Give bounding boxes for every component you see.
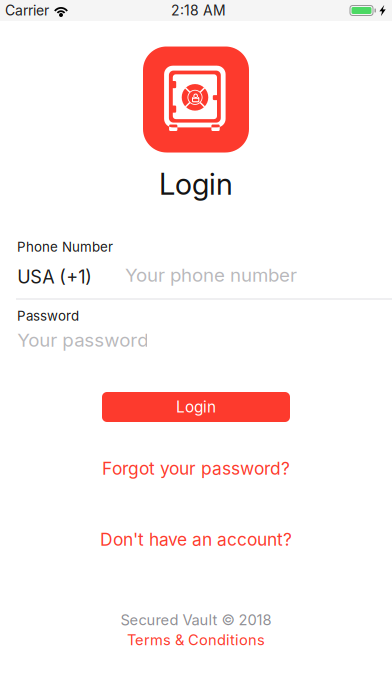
staticText: Carrier	[5, 2, 49, 19]
button[interactable]: Terms & Conditions	[116, 630, 276, 650]
button[interactable]: Don't have an account?	[86, 527, 306, 551]
staticText: Login	[159, 166, 233, 202]
staticText: Forgot your password?	[102, 458, 290, 479]
staticText: 2:18 AM	[171, 2, 226, 19]
staticText: Secured Vault © 2018	[120, 611, 271, 629]
staticText: Don't have an account?	[100, 529, 292, 550]
staticText: USA (+1)	[17, 266, 92, 288]
staticText: Your phone number	[125, 264, 297, 286]
staticText: Login	[176, 398, 216, 416]
staticText: Terms & Conditions	[127, 631, 265, 649]
button[interactable]: Login	[102, 392, 290, 422]
staticText: Password	[17, 308, 79, 324]
staticText: Your password	[17, 329, 148, 351]
staticText: Phone Number	[17, 239, 113, 255]
button[interactable]: Forgot your password?	[86, 456, 306, 480]
